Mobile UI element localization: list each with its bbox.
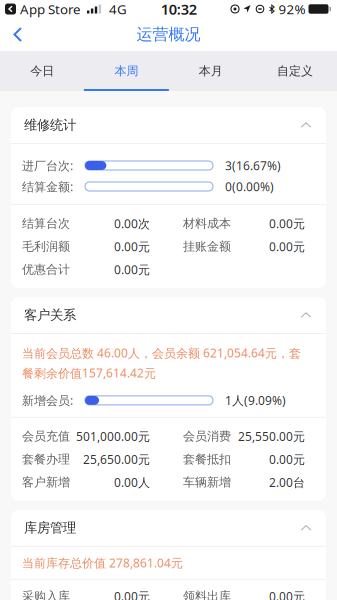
button[interactable]: 维修统计 [11, 107, 326, 143]
staticText: 501,000.00元 [76, 428, 150, 444]
staticText: 1人(9.09%) [225, 392, 286, 408]
button[interactable]: 库房管理 [11, 510, 326, 546]
staticText: 自定义 [277, 64, 313, 78]
staticText: 25,550.00元 [238, 428, 305, 444]
button[interactable]: 客户关系 [11, 297, 326, 333]
staticText: 当前库存总价值 278,861.04元 [22, 555, 183, 571]
staticText: 挂账金额 [183, 239, 231, 254]
staticText: 0(0.00%) [225, 178, 274, 194]
button[interactable]: 今日 [0, 51, 84, 91]
staticText: 客户关系 [24, 307, 76, 323]
staticText: 0.00元 [269, 588, 305, 600]
staticText: 0.00元 [114, 238, 150, 254]
staticText: 本月 [199, 64, 223, 78]
staticText: 10:32 [161, 0, 197, 19]
staticText: 当前会员总数 46.00人，会员余额 621,054.64元，套 [22, 345, 301, 361]
staticText: 结算金额: [22, 178, 73, 194]
staticText: 2.00台 [269, 474, 305, 490]
staticText: 餐剩余价值157,614.42元 [22, 365, 156, 381]
staticText: 本周 [114, 64, 138, 78]
staticText: 25,650.00元 [83, 451, 150, 467]
staticText: 运营概况 [136, 25, 200, 44]
staticText: 领料出库 [183, 589, 231, 600]
staticText: 4G [109, 0, 127, 18]
staticText: 套餐办理 [22, 452, 70, 467]
staticText: App Store [20, 0, 81, 18]
button[interactable]: 自定义 [253, 51, 337, 91]
staticText: 今日 [30, 64, 54, 78]
staticText: 0.00元 [114, 261, 150, 277]
staticText: 采购入库 [22, 589, 70, 600]
staticText: 客户新增 [22, 475, 70, 490]
button[interactable]: 本周 [84, 51, 168, 91]
staticText: 0.00元 [269, 451, 305, 467]
staticText: 维修统计 [24, 117, 76, 133]
staticText: 0.00人 [114, 474, 150, 490]
staticText: 材料成本 [183, 216, 231, 231]
staticText: 库房管理 [24, 520, 76, 536]
staticText: 0.00元 [269, 238, 305, 254]
staticText: 会员充值 [22, 429, 70, 444]
staticText: 优惠合计 [22, 262, 70, 277]
button[interactable]: Back [0, 18, 36, 51]
staticText: 3(16.67%) [225, 157, 281, 173]
staticText: 套餐抵扣 [183, 452, 231, 467]
staticText: 毛利润额 [22, 239, 70, 254]
staticText: 0.00次 [114, 215, 150, 231]
staticText: 会员消费 [183, 429, 231, 444]
staticText: 结算台次 [22, 216, 70, 231]
staticText: 0.00元 [114, 588, 150, 600]
staticText: 0.00元 [269, 215, 305, 231]
button[interactable]: 本月 [168, 51, 253, 91]
staticText: 新增会员: [22, 392, 73, 408]
staticText: 进厂台次: [22, 157, 73, 173]
staticText: 92% [278, 0, 305, 18]
staticText: 车辆新增 [183, 475, 231, 490]
